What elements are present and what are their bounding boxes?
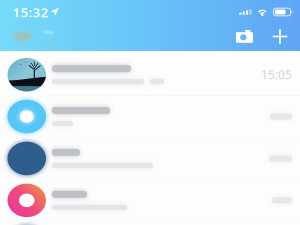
button[interactable] xyxy=(0,222,300,225)
button[interactable] xyxy=(0,138,300,179)
button[interactable]: New chat xyxy=(271,27,289,45)
button[interactable] xyxy=(0,96,300,137)
button[interactable]: 15:05 xyxy=(0,54,300,95)
button[interactable]: Account xyxy=(10,28,56,44)
button[interactable] xyxy=(0,180,300,221)
staticText: 15:05 xyxy=(261,67,292,83)
button[interactable]: Camera xyxy=(234,28,255,45)
staticText: 15:32 xyxy=(12,3,48,21)
